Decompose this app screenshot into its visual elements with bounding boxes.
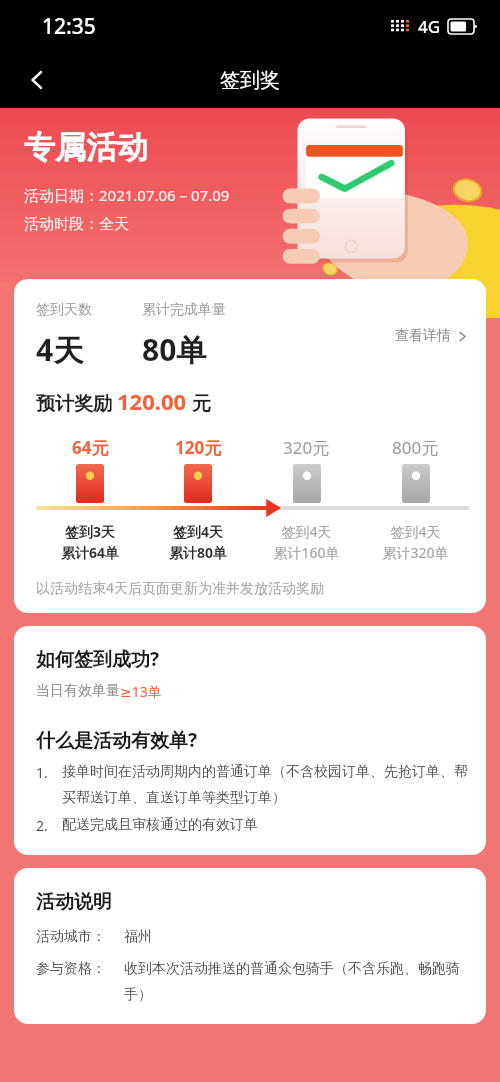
- staticText: 签到3天 累计64单: [36, 522, 144, 562]
- staticText: ≥13单: [120, 682, 162, 701]
- staticText: 4G: [418, 15, 441, 38]
- staticText: 64元: [72, 436, 109, 459]
- staticText: 120.00: [117, 386, 187, 416]
- staticText: 12:35: [42, 12, 96, 41]
- staticText: 元: [187, 390, 211, 416]
- staticText: 签到4天 累计320单: [361, 522, 470, 562]
- staticText: 签到奖: [220, 68, 280, 93]
- staticText: 福州: [124, 928, 152, 946]
- staticText: 80单: [142, 329, 207, 370]
- staticText: 800元: [392, 436, 439, 459]
- button[interactable]: Back: [14, 57, 60, 103]
- staticText: 收到本次活动推送的普通众包骑手（不含乐跑、畅跑骑手）: [124, 960, 468, 1004]
- staticText: 4天: [36, 329, 142, 370]
- staticText: 预计奖励: [36, 390, 117, 416]
- staticText: 配送完成且审核通过的有效订单: [62, 816, 258, 834]
- staticText: 1.: [36, 763, 62, 782]
- staticText: 320元: [283, 436, 330, 459]
- staticText: 查看详情: [395, 327, 451, 345]
- staticText: 2.: [36, 816, 62, 835]
- staticText: 活动城市：: [36, 928, 124, 946]
- staticText: 120元: [175, 436, 222, 459]
- staticText: 以活动结束4天后页面更新为准并发放活动奖励: [36, 578, 325, 597]
- staticText: 签到4天 累计160单: [252, 522, 361, 562]
- staticText: 签到天数: [36, 301, 142, 319]
- staticText: 专属活动: [24, 128, 148, 167]
- button[interactable]: 查看详情: [393, 319, 470, 353]
- staticText: 活动说明: [36, 890, 112, 914]
- staticText: 活动日期：2021.07.06 – 07.09: [24, 185, 230, 205]
- staticText: 如何签到成功?: [36, 646, 160, 672]
- staticText: 参与资格：: [36, 960, 124, 978]
- staticText: 当日有效单量: [36, 682, 120, 700]
- staticText: 累计完成单量: [142, 301, 226, 319]
- staticText: 接单时间在活动周期内的普通订单（不含校园订单、先抢订单、帮买帮送订单、直送订单等…: [62, 763, 468, 806]
- staticText: 活动时段：全天: [24, 215, 129, 234]
- staticText: 什么是活动有效单?: [36, 727, 198, 753]
- staticText: 签到4天 累计80单: [144, 522, 252, 562]
